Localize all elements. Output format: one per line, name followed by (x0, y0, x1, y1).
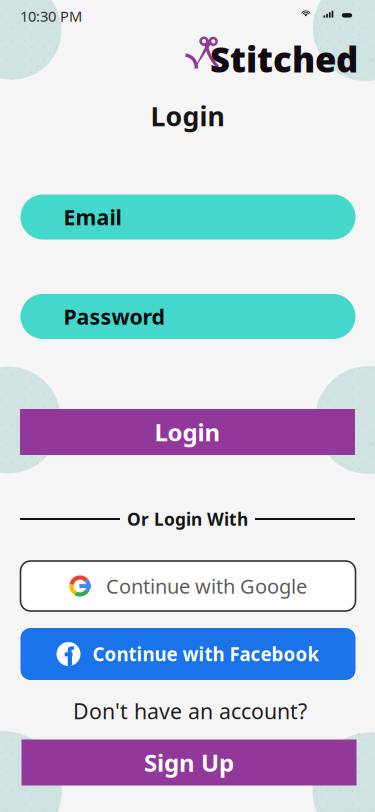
button[interactable]: Continue with Facebook (20, 628, 355, 680)
staticText: 10:30 PM (20, 6, 82, 26)
staticText: Continue with Google (106, 573, 307, 599)
staticText: Sign Up (144, 747, 234, 778)
staticText: Don't have an account? (73, 697, 307, 725)
button[interactable]: Email (20, 194, 355, 239)
button[interactable]: Sign Up (21, 739, 356, 785)
staticText: Or Login With (127, 507, 248, 530)
staticText: Email (63, 203, 121, 231)
staticText: Login (150, 98, 224, 134)
staticText: Continue with Facebook (92, 642, 319, 666)
button[interactable]: Password (20, 294, 355, 339)
button[interactable]: Login (20, 409, 355, 455)
staticText: Login (154, 416, 220, 448)
button[interactable]: Continue with Google (20, 561, 355, 611)
staticText: Password (63, 302, 164, 331)
staticText: Stitched (210, 36, 358, 82)
